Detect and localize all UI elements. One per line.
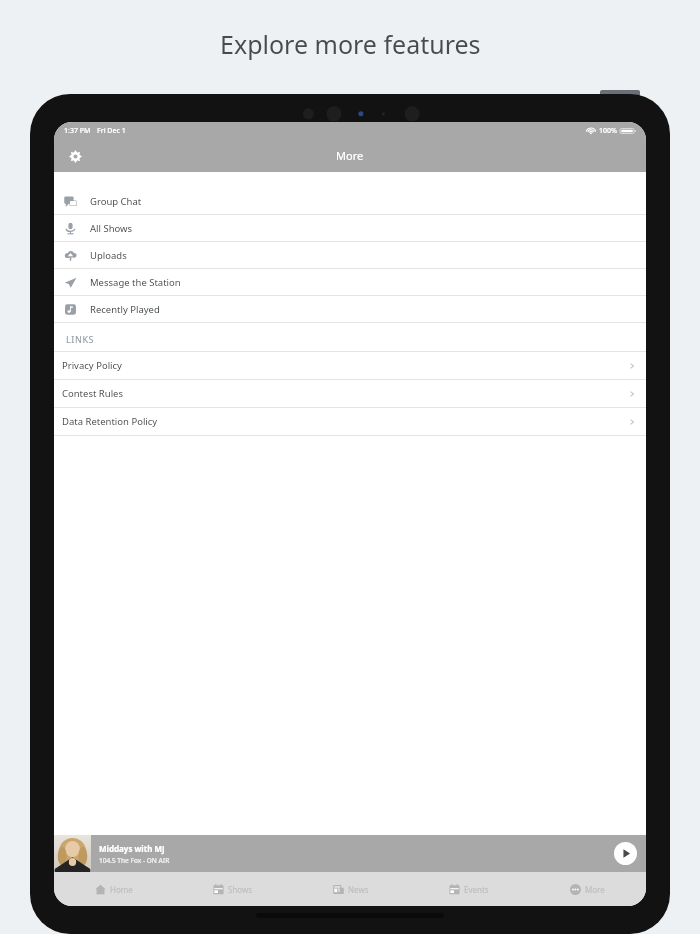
staticText: Data Retention Policy (62, 415, 158, 428)
staticText: Contest Rules (62, 387, 123, 400)
staticText: Recently Played (90, 303, 160, 316)
button[interactable]: More (528, 872, 646, 906)
button[interactable]: All Shows (54, 215, 646, 241)
staticText: Middays with MJ (99, 843, 165, 854)
staticText: Home (110, 884, 133, 895)
button[interactable]: Contest Rules (54, 380, 646, 407)
button[interactable]: Privacy Policy (54, 352, 646, 379)
staticText: More (585, 884, 605, 895)
button[interactable]: Home (54, 872, 173, 906)
staticText: More (336, 148, 364, 163)
staticText: All Shows (90, 222, 133, 235)
button[interactable]: Message the Station (54, 269, 646, 295)
button[interactable]: Uploads (54, 242, 646, 268)
staticText: 100% (599, 126, 617, 136)
staticText: Fri Dec 1 (97, 126, 126, 136)
staticText: Explore more features (220, 27, 481, 61)
staticText: Message the Station (90, 276, 181, 289)
staticText: Shows (228, 884, 253, 895)
button[interactable]: Settings (60, 141, 90, 171)
button[interactable]: Shows (173, 872, 292, 906)
staticText: LINKS (66, 333, 95, 345)
button[interactable]: Recently Played (54, 296, 646, 322)
staticText: Group Chat (90, 195, 142, 208)
staticText: Privacy Policy (62, 359, 122, 372)
button[interactable]: Play (614, 842, 637, 865)
staticText: 104.5 The Fox - ON AIR (99, 856, 170, 865)
staticText: Events (464, 884, 489, 895)
button[interactable]: Data Retention Policy (54, 408, 646, 435)
staticText: Uploads (90, 249, 127, 262)
button[interactable]: News (292, 872, 410, 906)
button[interactable]: Group Chat (54, 188, 646, 214)
button[interactable] (54, 835, 91, 872)
staticText: News (348, 884, 369, 895)
staticText: 1:37 PM (64, 126, 91, 136)
button[interactable]: Events (410, 872, 528, 906)
